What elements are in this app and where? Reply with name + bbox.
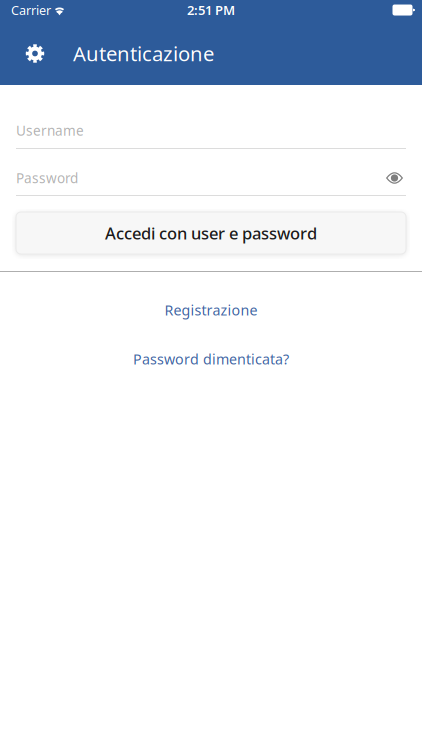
staticText: Username	[16, 121, 84, 140]
button[interactable]: Registrazione	[0, 296, 422, 324]
staticText: Autenticazione	[73, 40, 214, 67]
staticText: Accedi con user e password	[105, 222, 317, 244]
button[interactable]: Show password	[383, 163, 406, 193]
staticText: 2:51 PM	[187, 1, 235, 19]
staticText: Password	[16, 169, 78, 187]
button[interactable]: Password dimenticata?	[0, 345, 422, 373]
staticText: Carrier	[11, 1, 51, 19]
button[interactable]: Settings	[13, 27, 57, 79]
staticText: Registrazione	[164, 300, 257, 320]
button[interactable]: Accedi con user e password	[16, 212, 406, 254]
staticText: Password dimenticata?	[133, 349, 289, 369]
